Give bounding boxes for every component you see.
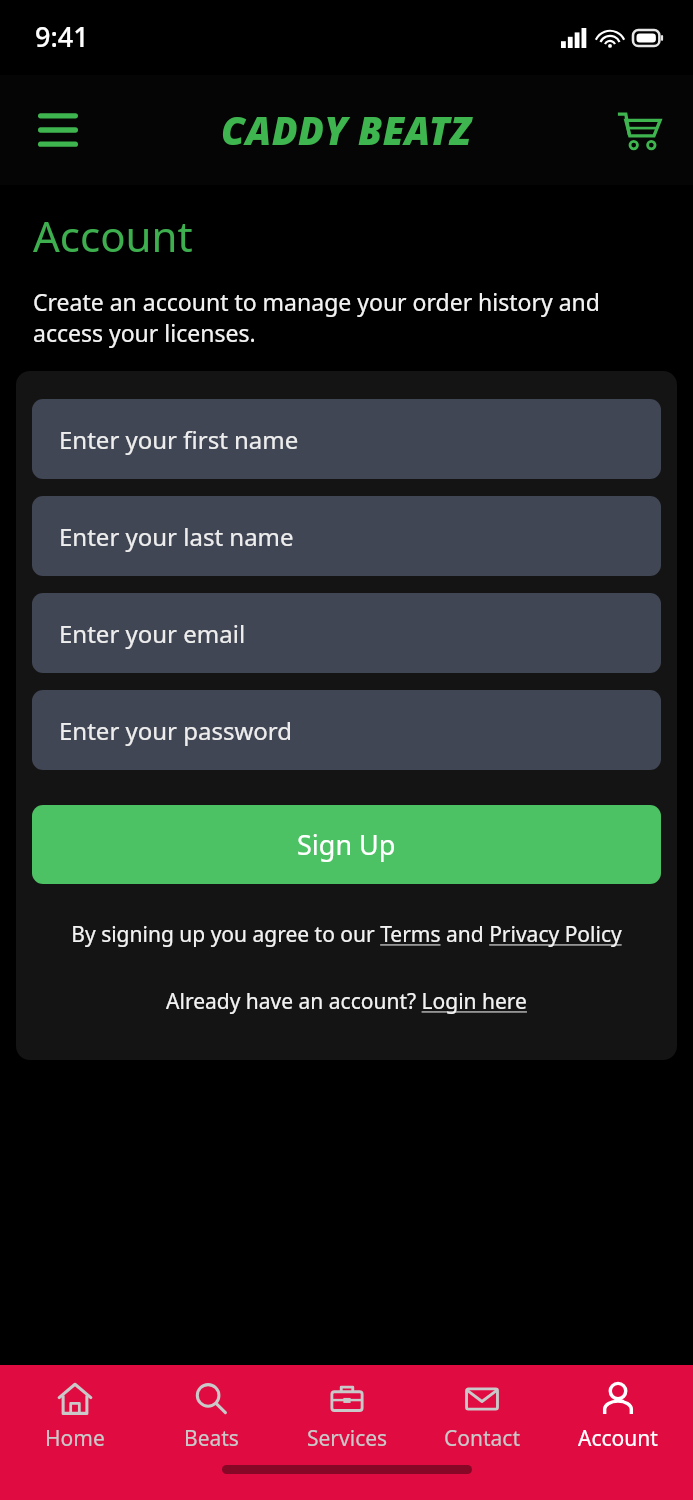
- button[interactable]: Enter your first name: [32, 399, 661, 479]
- button[interactable]: Sign Up: [32, 805, 661, 884]
- button[interactable]: Cart: [607, 98, 671, 162]
- button[interactable]: Already have an account? Login here: [166, 987, 527, 1016]
- button[interactable]: Account: [557, 1377, 679, 1457]
- button[interactable]: Enter your email: [32, 593, 661, 673]
- staticText: Enter your password: [59, 714, 293, 747]
- button[interactable]: Services: [286, 1377, 408, 1457]
- staticText: Home: [45, 1424, 105, 1453]
- staticText: Account: [578, 1424, 658, 1453]
- button[interactable]: By signing up you agree to our Terms and…: [71, 920, 622, 949]
- button[interactable]: Contact: [421, 1377, 543, 1457]
- staticText: Contact: [444, 1424, 520, 1453]
- staticText: Account: [33, 207, 193, 264]
- staticText: 9:41: [35, 18, 89, 55]
- staticText: Services: [307, 1424, 388, 1453]
- button[interactable]: Beats: [150, 1377, 272, 1457]
- staticText: CADDY BEATZ: [221, 104, 472, 156]
- button[interactable]: Enter your last name: [32, 496, 661, 576]
- staticText: Beats: [184, 1424, 239, 1453]
- button[interactable]: Enter your password: [32, 690, 661, 770]
- staticText: Enter your last name: [59, 520, 294, 553]
- staticText: Enter your email: [59, 617, 246, 650]
- button[interactable]: Menu: [22, 94, 94, 166]
- staticText: Create an account to manage your order h…: [33, 286, 660, 349]
- staticText: Sign Up: [297, 826, 396, 863]
- button[interactable]: Home: [14, 1377, 136, 1457]
- staticText: Enter your first name: [59, 423, 299, 456]
